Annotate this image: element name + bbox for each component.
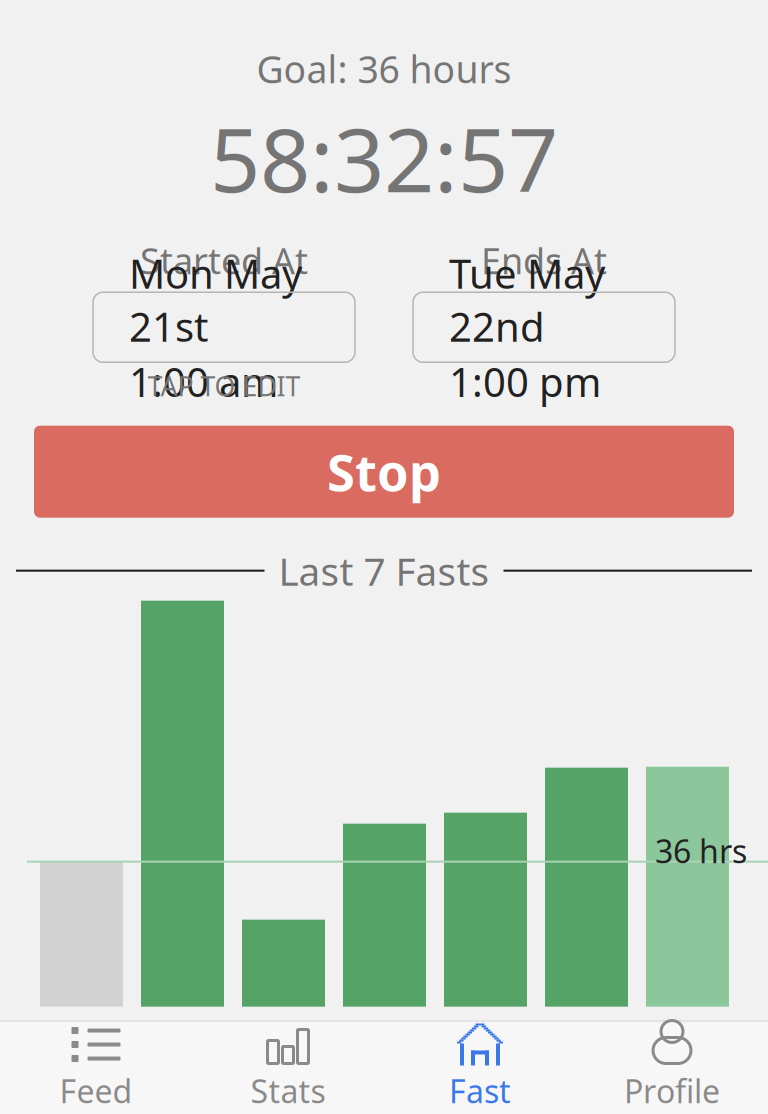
staticText: Stats [250, 1069, 325, 1112]
staticText: 1:00 pm [449, 355, 601, 408]
staticText: Mon [550, 1013, 623, 1059]
staticText: Tue [153, 1013, 212, 1059]
staticText: Feed [59, 1069, 132, 1112]
button[interactable]: Mon May 21st [93, 292, 355, 362]
staticText: Mon May 21st [129, 247, 302, 353]
staticText: na [61, 1013, 101, 1059]
staticText [540, 368, 547, 404]
button[interactable]: Fast [384, 1022, 576, 1114]
staticText: Goal: 36 hours [256, 44, 511, 94]
staticText: Mon [247, 1013, 320, 1059]
staticText: Fast [449, 1069, 511, 1112]
staticText: Mon [651, 1013, 724, 1059]
staticText: 1:00 am [129, 355, 278, 408]
button[interactable]: Stats [192, 1022, 384, 1114]
staticText: Thu [455, 1013, 516, 1059]
staticText: 36 hrs [655, 830, 747, 872]
staticText: Profile [624, 1069, 720, 1112]
button[interactable]: Feed [0, 1022, 192, 1114]
staticText: Ends At [481, 236, 607, 284]
staticText: Tue May 22nd [449, 247, 605, 353]
staticText: 58:32:57 [210, 100, 558, 216]
staticText: Last 7 Fasts [278, 545, 489, 596]
staticText: TAP TO EDIT [147, 368, 300, 404]
button[interactable]: Tue May 22nd [413, 292, 675, 362]
button[interactable]: Profile [576, 1022, 768, 1114]
staticText: Wed [348, 1013, 421, 1059]
staticText: Started At [140, 236, 308, 284]
staticText: Stop [327, 438, 441, 505]
button[interactable]: Stop [34, 426, 734, 518]
